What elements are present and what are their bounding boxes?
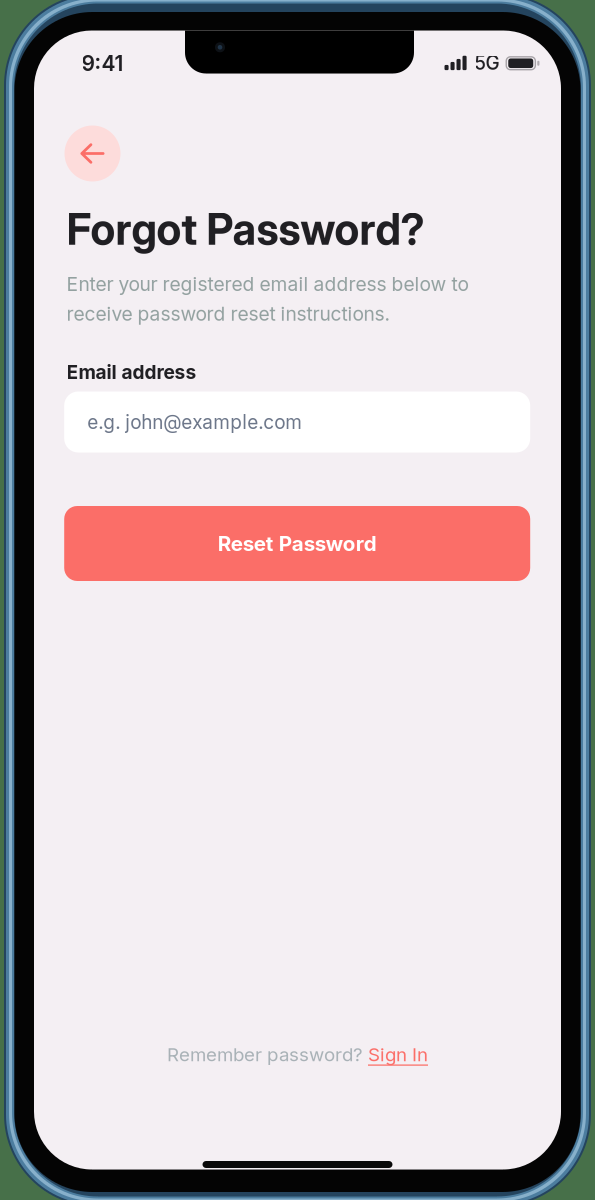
staticText: 9:41 bbox=[81, 50, 123, 76]
staticText: e.g. john@example.com bbox=[87, 410, 302, 433]
staticText: Reset Password bbox=[218, 531, 377, 556]
button[interactable]: Back bbox=[64, 125, 120, 181]
staticText: Remember password? bbox=[167, 1043, 368, 1066]
staticText: Enter your registered email address belo… bbox=[66, 272, 468, 296]
staticText: Email address bbox=[66, 360, 196, 384]
staticText: Forgot Password? bbox=[66, 203, 424, 255]
staticText: 5G bbox=[474, 51, 499, 74]
staticText: receive password reset instructions. bbox=[66, 302, 390, 325]
button[interactable]: Remember password? bbox=[147, 1040, 447, 1068]
staticText: Sign In bbox=[368, 1043, 428, 1066]
button[interactable]: Reset Password bbox=[64, 506, 530, 581]
